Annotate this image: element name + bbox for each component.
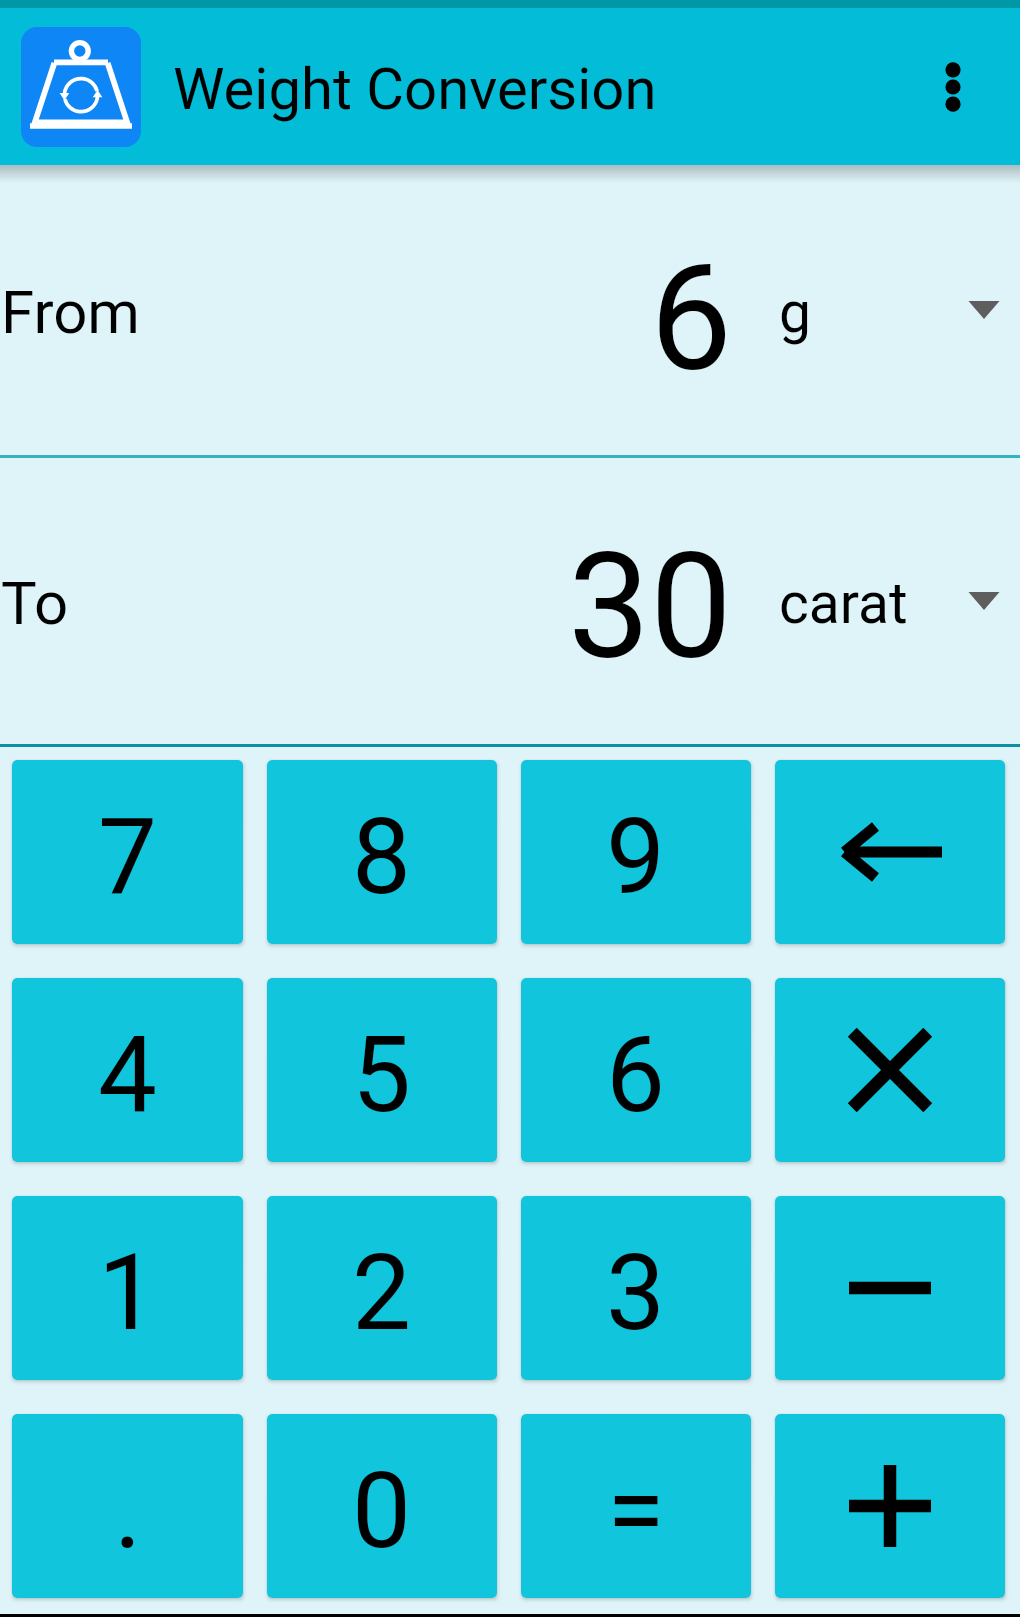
button[interactable]: Weight conversion app icon [21,27,141,147]
button[interactable]: More options [898,32,1008,142]
button[interactable]: 9 [521,760,751,944]
button[interactable]: From [0,165,1020,455]
button[interactable]: 7 [12,760,243,944]
button[interactable]: 3 [521,1196,751,1380]
staticText: 0 [352,1450,412,1573]
staticText: To [1,568,69,638]
staticText: g [779,279,812,346]
button[interactable]: Multiply [775,978,1005,1162]
button[interactable]: To [0,458,1020,744]
button[interactable]: 8 [267,760,497,944]
staticText: 7 [98,796,158,919]
staticText: 30 [568,522,733,693]
button[interactable]: 2 [267,1196,497,1380]
other: Plus [775,1414,1005,1598]
staticText: From [1,277,140,347]
button[interactable]: Backspace [775,760,1005,944]
other: Backspace [775,760,1005,944]
button[interactable]: = [521,1414,751,1598]
button[interactable]: 5 [267,978,497,1162]
staticText: 5 [352,1014,412,1137]
staticText: 6 [650,234,733,405]
button[interactable]: 0 [267,1414,497,1598]
staticText: Weight Conversion [173,55,657,123]
button[interactable]: 1 [12,1196,243,1380]
staticText: 4 [98,1014,158,1137]
staticText: 2 [352,1232,412,1355]
staticText: . [114,1450,142,1573]
staticText: = [607,1450,665,1573]
button[interactable]: 6 [521,978,751,1162]
staticText: 8 [352,796,412,919]
button[interactable]: Plus [775,1414,1005,1598]
other: Minus [775,1196,1005,1380]
staticText: 6 [606,1014,666,1137]
other: Multiply [775,978,1005,1162]
staticText: carat [779,570,908,637]
button[interactable]: Minus [775,1196,1005,1380]
button[interactable]: . [12,1414,243,1598]
staticText: 3 [606,1232,666,1355]
staticText: 1 [98,1232,158,1355]
button[interactable]: 4 [12,978,243,1162]
staticText: 9 [606,796,666,919]
